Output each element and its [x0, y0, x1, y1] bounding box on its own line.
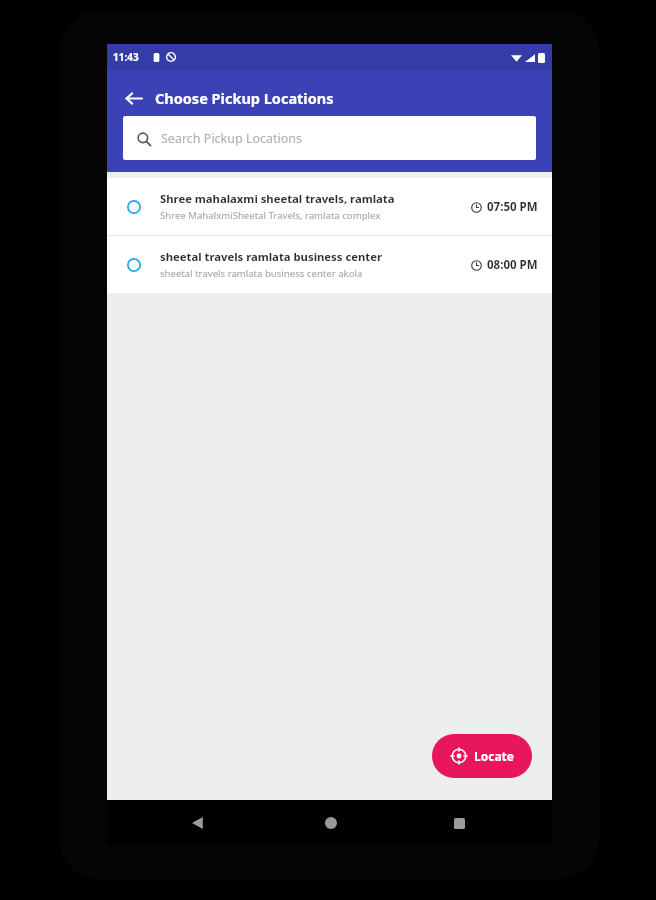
button[interactable]: sheetal travels ramlata business center — [107, 236, 552, 293]
staticText: 11:43 — [113, 50, 139, 64]
staticText: Search Pickup Locations — [161, 130, 303, 147]
staticText: Choose Pickup Locations — [155, 88, 334, 108]
button[interactable]: Back — [183, 808, 213, 838]
button[interactable]: Back — [115, 80, 151, 116]
button[interactable]: Shree mahalaxmi sheetal travels, ramlata — [107, 178, 552, 235]
button[interactable]: Locate — [432, 734, 532, 778]
staticText: Shree MahalxmiSheetal Travels, ramlata c… — [160, 209, 381, 222]
button[interactable]: Home — [316, 808, 346, 838]
staticText: 07:50 PM — [487, 199, 538, 215]
button[interactable]: Search Pickup Locations — [123, 116, 536, 160]
button[interactable]: Recents — [444, 808, 474, 838]
staticText: sheetal travels ramlata business center — [160, 249, 382, 264]
staticText: 08:00 PM — [487, 257, 538, 273]
staticText: Shree mahalaxmi sheetal travels, ramlata — [160, 191, 395, 206]
staticText: Locate — [474, 748, 514, 764]
staticText: sheetal travels ramlata business center … — [160, 267, 363, 280]
